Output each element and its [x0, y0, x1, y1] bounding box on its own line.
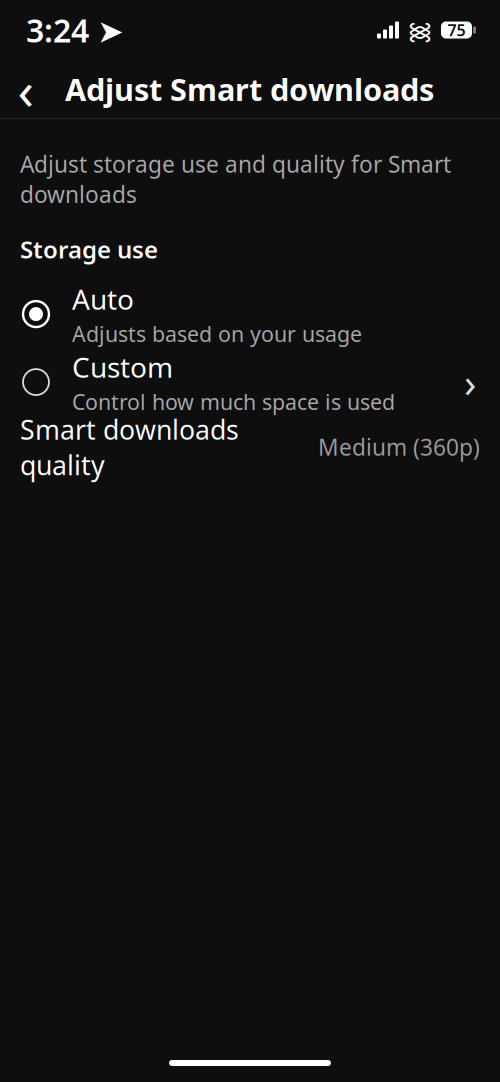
staticText: 3:24 ➤ [26, 9, 124, 51]
staticText: Medium (360p) [318, 432, 480, 462]
staticText: Adjust Smart downloads [65, 69, 434, 109]
staticText: ᯼ [407, 14, 433, 46]
button[interactable]: Smart downloads quality [0, 425, 500, 469]
button[interactable]: Auto [0, 285, 500, 343]
staticText: Smart downloads quality [20, 412, 239, 482]
staticText: Storage use [20, 233, 158, 265]
button[interactable]: Custom [0, 353, 500, 411]
staticText: › [464, 355, 476, 409]
staticText: Adjust storage use and quality for Smart… [20, 149, 451, 209]
staticText: Control how much space is used [72, 387, 395, 416]
staticText: Adjusts based on your usage [72, 319, 362, 348]
staticText: 75 [447, 19, 465, 41]
staticText: Custom [72, 348, 173, 385]
button[interactable]: Back [3, 60, 49, 118]
staticText: ‹ [17, 54, 34, 124]
staticText: Auto [72, 280, 134, 317]
